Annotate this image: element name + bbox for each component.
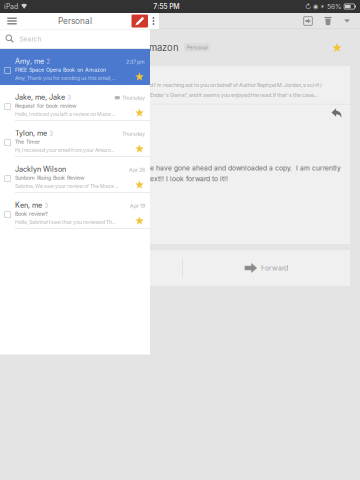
staticText: ↻ — [305, 2, 311, 11]
button[interactable]: Jake, me, Jake — [0, 85, 150, 121]
staticText: e have gone ahead and downloaded a copy.… — [150, 164, 341, 172]
staticText: 2:37 pm — [126, 59, 145, 65]
staticText: Hello, I noticed you left a review on Ma… — [15, 111, 115, 117]
staticText: ✶ — [320, 3, 325, 10]
staticText: 3 — [44, 202, 47, 209]
button[interactable]: Ken, me — [0, 193, 150, 229]
staticText: ◉ — [313, 3, 318, 10]
staticText: Thursday — [122, 131, 145, 137]
staticText: Personal — [58, 16, 92, 26]
staticText: Hi, I received your email from your Amaz… — [15, 147, 114, 153]
staticText: d I'm reaching out to you on behalf of A… — [150, 82, 322, 88]
button[interactable]: More options — [150, 13, 157, 29]
staticText: Sunbom Rising Book Review — [15, 175, 84, 181]
staticText: Book review? — [15, 211, 48, 217]
button[interactable]: Reply — [10, 250, 182, 286]
staticText: 2 — [46, 58, 49, 65]
staticText: 7:55 PM — [153, 2, 179, 11]
button[interactable]: Archive — [298, 13, 318, 29]
staticText: FREE Space Opera Book on Amazon — [15, 67, 106, 73]
button[interactable]: Forward — [183, 250, 350, 286]
staticText: Search — [19, 35, 41, 43]
staticText: Tylon, me — [15, 129, 47, 138]
staticText: Jake, me, Jake — [15, 93, 65, 102]
button[interactable]: Jacklyn Wilson — [0, 157, 150, 193]
staticText: 56% — [327, 2, 342, 11]
staticText: FREE Space Opera Book on Amazon — [15, 42, 179, 53]
staticText: Jacklyn Wilson — [15, 165, 66, 174]
staticText: 3 — [67, 94, 70, 101]
button[interactable]: Tylon, me — [0, 121, 150, 157]
staticText: Forward — [261, 264, 288, 272]
staticText: Apr 26 — [129, 167, 145, 173]
staticText: Amy, me — [15, 57, 44, 66]
staticText: Personal — [187, 44, 208, 51]
staticText: Amy, Thank you for sending us this email… — [15, 75, 115, 81]
staticText: Ender's Game", and it seems you enjoyed … — [150, 92, 317, 98]
button[interactable]: Compose — [131, 14, 148, 27]
staticText: 3 — [49, 130, 52, 137]
button[interactable]: More actions — [338, 13, 356, 29]
staticText: Thursday — [122, 95, 145, 101]
staticText: Request for book review — [15, 103, 76, 109]
staticText: Apr 19 — [130, 203, 145, 209]
staticText: Sabrina, We saw your review of The Maze … — [15, 183, 118, 189]
button[interactable]: Amy, me — [0, 49, 150, 85]
button[interactable]: Reply — [331, 108, 342, 118]
staticText: iPad — [4, 2, 18, 11]
staticText: The Timer — [15, 139, 40, 145]
button[interactable]: Menu — [3, 13, 21, 29]
staticText: ext!! I look forward to it!! — [150, 175, 228, 183]
staticText: Ken, me — [15, 201, 42, 210]
button[interactable]: Delete — [318, 13, 338, 29]
staticText: Hello, Sabrina! I saw that you reviewed … — [15, 219, 115, 225]
